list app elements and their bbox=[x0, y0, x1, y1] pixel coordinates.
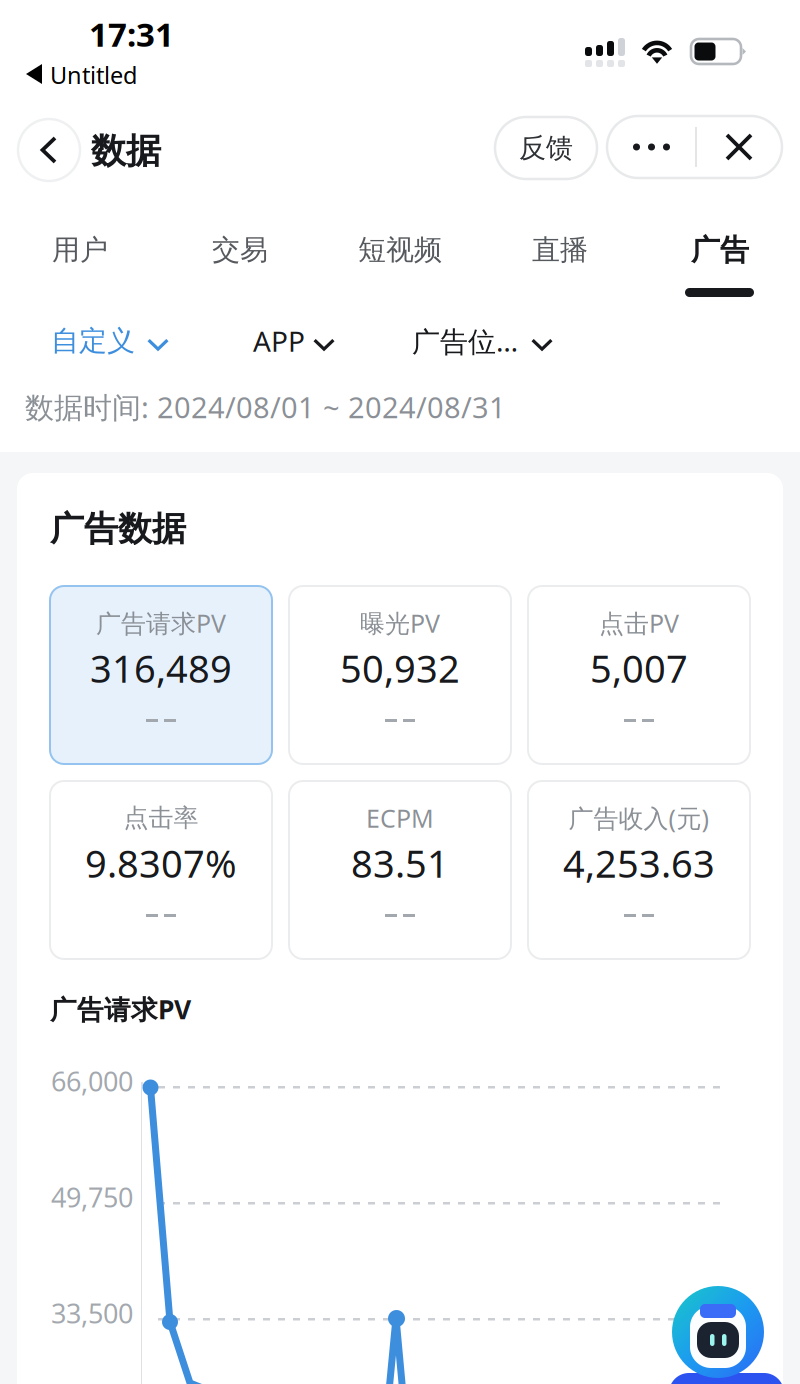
staticText: 反馈 bbox=[519, 131, 573, 165]
button[interactable]: ECPM bbox=[289, 781, 511, 959]
staticText: 17:31 bbox=[89, 11, 174, 56]
staticText: 广告数据 bbox=[50, 508, 186, 550]
staticText: 广告收入(元) bbox=[568, 801, 709, 835]
button[interactable]: 曝光PV bbox=[289, 586, 511, 764]
staticText: 直播 bbox=[532, 232, 588, 268]
button[interactable]: Back bbox=[18, 119, 80, 181]
staticText: 83.51 bbox=[351, 837, 449, 889]
button[interactable]: 广告位… bbox=[412, 316, 652, 366]
staticText: 用户 bbox=[52, 232, 108, 268]
staticText: 广告请求PV bbox=[50, 991, 191, 1027]
button[interactable]: APP bbox=[253, 316, 413, 366]
staticText: 数据时间: 2024/08/01 ~ 2024/08/31 bbox=[25, 387, 506, 427]
staticText: 广告 bbox=[691, 232, 749, 268]
staticText: ECPM bbox=[366, 801, 434, 835]
button[interactable]: More options bbox=[607, 116, 696, 178]
button[interactable]: Close bbox=[696, 116, 782, 178]
button[interactable]: 直播 bbox=[490, 230, 630, 306]
button[interactable]: 广告收入(元) bbox=[528, 781, 750, 959]
staticText: 49,750 bbox=[51, 1179, 133, 1215]
button[interactable]: 广告 bbox=[650, 230, 790, 306]
staticText: 自定义 bbox=[51, 323, 135, 359]
staticText: 点击PV bbox=[599, 606, 679, 640]
staticText: 4,253.63 bbox=[563, 837, 715, 889]
button[interactable]: 点击PV bbox=[528, 586, 750, 764]
staticText: 数据 bbox=[91, 129, 161, 173]
button[interactable]: 短视频 bbox=[330, 230, 470, 306]
button[interactable]: 点击率 bbox=[50, 781, 272, 959]
staticText: 66,000 bbox=[51, 1063, 133, 1099]
button[interactable]: 用户 bbox=[10, 230, 150, 306]
staticText: 316,489 bbox=[90, 642, 232, 694]
staticText: 33,500 bbox=[51, 1295, 133, 1331]
staticText: 交易 bbox=[212, 232, 268, 268]
staticText: 5,007 bbox=[590, 642, 688, 694]
staticText: 广告位… bbox=[412, 322, 518, 360]
staticText: 广告请求PV bbox=[96, 606, 226, 640]
staticText: 曝光PV bbox=[360, 606, 440, 640]
staticText: 50,932 bbox=[340, 642, 460, 694]
button[interactable]: 反馈 bbox=[495, 117, 597, 179]
staticText: APP bbox=[253, 322, 305, 360]
staticText: 9.8307% bbox=[85, 837, 237, 889]
button[interactable]: 广告请求PV bbox=[50, 586, 272, 764]
staticText: 短视频 bbox=[358, 232, 442, 268]
button[interactable]: 自定义 bbox=[51, 316, 251, 366]
staticText: 点击率 bbox=[123, 802, 198, 834]
button[interactable]: 交易 bbox=[170, 230, 310, 306]
staticText: Untitled bbox=[50, 59, 137, 91]
button[interactable]: AI assistant bbox=[669, 1284, 800, 1384]
